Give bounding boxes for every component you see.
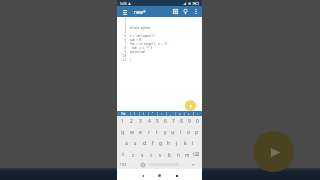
staticText: y (164, 129, 167, 136)
button[interactable]: v (156, 149, 165, 160)
staticText: Tab (121, 112, 126, 116)
button[interactable]: p (193, 127, 201, 138)
button[interactable]: ?123 (117, 160, 130, 169)
button[interactable]: s (131, 138, 140, 149)
staticText: 8 (117, 46, 126, 50)
staticText: . (182, 162, 183, 167)
staticText: a (125, 140, 128, 147)
staticText: j (176, 140, 178, 147)
button[interactable]: ⇧ (118, 149, 128, 160)
button[interactable]: d (140, 138, 149, 149)
staticText: e (139, 129, 142, 136)
button[interactable]: 5 (153, 116, 161, 127)
button[interactable]: 7 (169, 116, 177, 127)
button[interactable]: : (157, 111, 166, 116)
staticText: ) (143, 112, 144, 116)
button[interactable]: , (166, 111, 175, 116)
button[interactable]: h (165, 138, 173, 149)
staticText: ?123 (120, 163, 127, 167)
staticText: s (134, 140, 137, 147)
button[interactable]: ( (130, 111, 139, 116)
staticText: 3 (139, 118, 142, 125)
button[interactable]: 8 (177, 116, 185, 127)
staticText: ( (134, 112, 135, 116)
button[interactable]: o (185, 127, 193, 138)
button[interactable]: ⌫ (192, 149, 201, 160)
button[interactable]: Enter (186, 160, 202, 169)
staticText: i (180, 129, 182, 136)
button[interactable]: x (138, 149, 147, 160)
button[interactable]: u (169, 127, 177, 138)
button[interactable]: r (145, 127, 153, 138)
staticText: t (156, 129, 158, 136)
staticText: 2 (117, 22, 126, 26)
staticText: p (195, 129, 199, 136)
staticText: 11 (117, 58, 126, 62)
button[interactable]: Play (253, 131, 294, 172)
staticText: g (159, 140, 163, 147)
button[interactable]: 0 (193, 116, 201, 127)
button[interactable]: Undo (180, 6, 190, 17)
button[interactable]: Home (155, 171, 164, 180)
button[interactable]: g (157, 138, 165, 149)
button[interactable]: q (118, 127, 127, 138)
button[interactable]: More options (190, 6, 202, 17)
button[interactable]: f (149, 138, 157, 149)
button[interactable]: n (174, 149, 183, 160)
staticText: ⌫ (193, 152, 200, 157)
button[interactable]: m (183, 149, 192, 160)
button[interactable]: e (136, 127, 145, 138)
button[interactable]: l (189, 138, 197, 149)
staticText: : (161, 112, 162, 116)
staticText: 3 (117, 26, 126, 30)
button[interactable]: c (147, 149, 156, 160)
staticText: x (141, 152, 144, 158)
button[interactable]: z (128, 149, 138, 160)
button[interactable]: b (165, 149, 174, 160)
button[interactable]: y (161, 127, 169, 138)
button[interactable]: Run code (185, 100, 196, 111)
button[interactable]: 3 (136, 116, 145, 127)
button[interactable]: Back (138, 171, 147, 180)
button[interactable]: , (130, 160, 137, 169)
button[interactable]: j (173, 138, 181, 149)
button[interactable]: - (193, 111, 202, 116)
button[interactable]: Tab (117, 111, 130, 116)
button[interactable]: k (181, 138, 189, 149)
button[interactable]: 6 (161, 116, 169, 127)
button[interactable]: a (122, 138, 131, 149)
button[interactable]: Voice input (137, 160, 148, 169)
staticText: 10 (117, 54, 126, 58)
button[interactable]: 4 (145, 116, 153, 127)
staticText: 5:06 (120, 1, 127, 6)
button[interactable]: t (153, 127, 161, 138)
staticText: sum += i ** 3 (132, 46, 153, 50)
button[interactable]: = (175, 111, 184, 116)
button[interactable]: 2 (127, 116, 136, 127)
button[interactable]: 1 (118, 116, 127, 127)
staticText: q (121, 129, 125, 136)
button[interactable]: Menu (119, 6, 130, 17)
staticText: #Curso python (130, 26, 151, 30)
button[interactable]: 9 (185, 116, 193, 127)
button[interactable]: i (177, 127, 185, 138)
button[interactable]: " (148, 111, 157, 116)
staticText: 8 (180, 118, 183, 125)
staticText: ⇧ (121, 152, 125, 157)
staticText: v (159, 152, 162, 158)
button[interactable]: w (127, 127, 136, 138)
button[interactable]: + (184, 111, 193, 116)
button[interactable]: ) (139, 111, 148, 116)
staticText: f (152, 140, 154, 147)
staticText: sum = 0 (130, 38, 141, 42)
staticText: 5 (117, 34, 126, 38)
staticText: 4 (117, 30, 126, 34)
button[interactable]: Save (170, 6, 180, 17)
staticText: ↵ (192, 163, 196, 167)
staticText: new* (134, 9, 146, 15)
staticText: 6 (164, 118, 167, 125)
staticText: 9 (188, 118, 191, 125)
button[interactable]: Recents (172, 171, 181, 180)
